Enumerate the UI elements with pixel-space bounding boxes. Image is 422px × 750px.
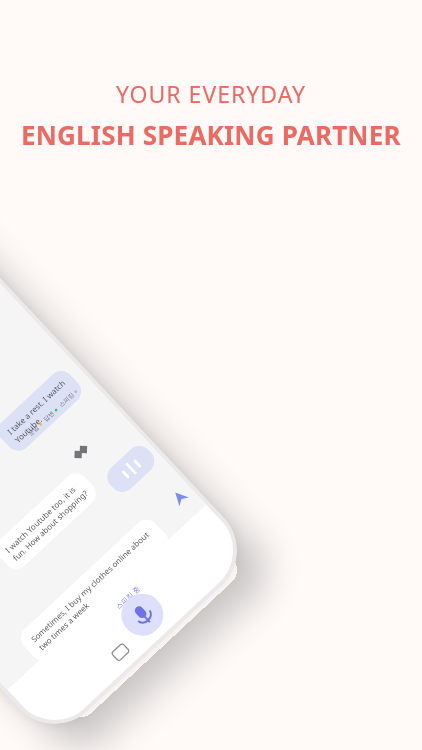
button[interactable]: I take a rest. I watch Youtube.: [4, 377, 75, 445]
button[interactable]: Sometimes, I buy my clothes online about…: [28, 527, 161, 653]
button[interactable]: Recording: [102, 441, 160, 497]
staticText: ENGLISH SPEAKING PARTNER: [21, 117, 401, 152]
staticText: YOUR EVERYDAY: [116, 78, 306, 109]
button[interactable]: Speak: [113, 585, 172, 644]
button[interactable]: Scroll to latest: [165, 483, 193, 511]
button[interactable]: I watch Youtube too, it is fun. How abou…: [2, 479, 90, 563]
staticText: I take a rest. I watch Youtube.: [4, 377, 75, 445]
button[interactable]: Keyboard: [107, 639, 132, 665]
staticText: 스피킹: [57, 391, 76, 409]
staticText: 스피킹 중: [114, 584, 142, 612]
staticText: 답변: [42, 409, 56, 423]
staticText: 문법: [26, 423, 40, 437]
staticText: I watch Youtube too, it is fun. How abou…: [2, 479, 90, 563]
staticText: Sometimes, I buy my clothes online about…: [28, 528, 160, 653]
